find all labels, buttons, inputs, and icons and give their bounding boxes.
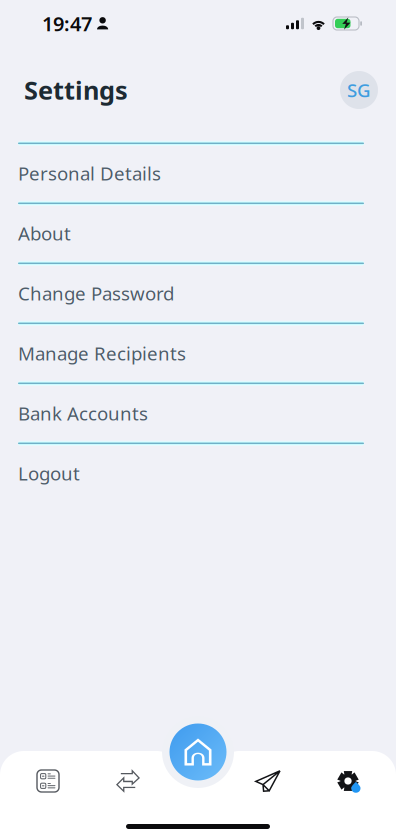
- staticText: Logout: [18, 461, 80, 486]
- button[interactable]: Bank Accounts: [0, 381, 396, 441]
- button[interactable]: Profile: [340, 71, 378, 109]
- button[interactable]: About: [0, 201, 396, 261]
- staticText: Settings: [24, 73, 128, 107]
- button[interactable]: Personal Details: [0, 141, 396, 201]
- staticText: Bank Accounts: [18, 401, 148, 426]
- staticText: Change Password: [18, 281, 174, 306]
- button[interactable]: Home: [164, 718, 232, 786]
- staticText: 19:47: [42, 10, 92, 37]
- button[interactable]: Settings: [300, 770, 396, 792]
- button[interactable]: Transactions: [0, 770, 96, 792]
- button[interactable]: Change Password: [0, 261, 396, 321]
- button[interactable]: Send: [236, 770, 300, 792]
- staticText: Manage Recipients: [18, 341, 186, 366]
- button[interactable]: Manage Recipients: [0, 321, 396, 381]
- button[interactable]: Transfer: [96, 770, 160, 792]
- button[interactable]: Logout: [0, 441, 396, 501]
- staticText: About: [18, 221, 71, 246]
- staticText: SG: [347, 78, 371, 102]
- staticText: Personal Details: [18, 161, 161, 186]
